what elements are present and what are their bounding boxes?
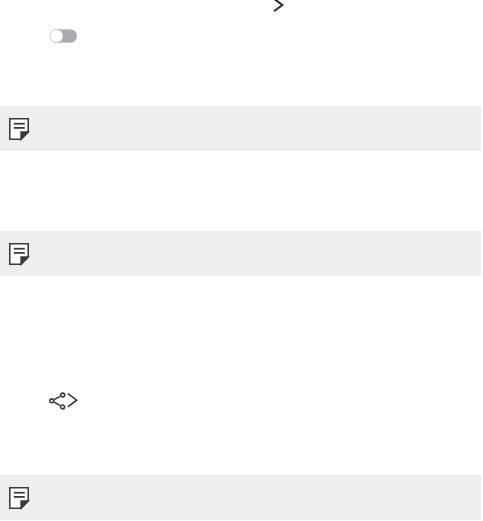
button[interactable]: Toggle setting	[0, 14, 483, 58]
button[interactable]: Open	[0, 0, 483, 31]
button[interactable]: Note	[0, 475, 481, 520]
button[interactable]: Share	[0, 378, 483, 422]
button[interactable]: Note	[0, 106, 481, 151]
other: Open	[264, 0, 296, 31]
button[interactable]: Note	[0, 231, 481, 276]
